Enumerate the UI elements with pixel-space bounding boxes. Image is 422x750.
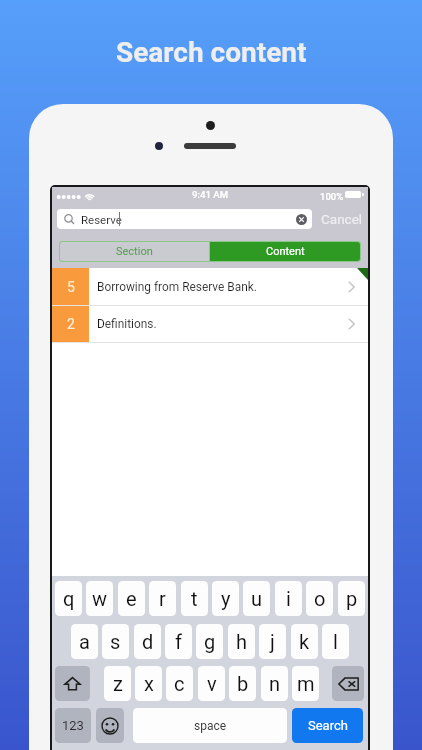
staticText: a — [79, 630, 90, 653]
staticText: x — [144, 672, 154, 695]
staticText: o — [314, 587, 326, 610]
staticText: b — [237, 672, 249, 695]
staticText: Search content — [116, 36, 307, 69]
button[interactable]: Section — [60, 242, 209, 261]
button[interactable]: Backspace — [332, 666, 364, 701]
button[interactable]: Search — [292, 708, 363, 743]
staticText: 123 — [62, 718, 84, 733]
staticText: Borrowing from Reserve Bank. — [97, 280, 257, 294]
button[interactable]: y — [212, 581, 239, 616]
button[interactable]: p — [338, 581, 365, 616]
button[interactable]: u — [243, 581, 270, 616]
button[interactable]: a — [71, 624, 98, 659]
staticText: n — [269, 672, 281, 695]
button[interactable]: j — [259, 624, 286, 659]
button[interactable]: Emoji — [96, 708, 124, 743]
staticText: c — [174, 672, 185, 695]
button[interactable]: Clear text — [296, 214, 307, 225]
button[interactable]: g — [196, 624, 223, 659]
staticText: w — [92, 587, 108, 610]
button[interactable]: b — [229, 666, 256, 701]
staticText: 2 — [67, 316, 75, 332]
button[interactable]: w — [86, 581, 113, 616]
staticText: q — [63, 587, 75, 610]
staticText: Section — [116, 245, 153, 258]
staticText: z — [113, 672, 123, 695]
button[interactable]: 5 — [52, 268, 368, 305]
staticText: Content — [266, 245, 305, 258]
button[interactable]: Cancel — [319, 209, 364, 229]
staticText: t — [191, 587, 198, 610]
button[interactable]: i — [275, 581, 302, 616]
staticText: Reserve — [81, 213, 122, 226]
staticText: Definitions. — [97, 317, 157, 331]
staticText: k — [299, 630, 310, 653]
button[interactable]: n — [261, 666, 288, 701]
staticText: j — [270, 630, 275, 653]
staticText: 9:41 AM — [192, 189, 229, 200]
button[interactable]: h — [228, 624, 255, 659]
staticText: s — [110, 630, 121, 653]
button[interactable]: t — [181, 581, 208, 616]
button[interactable]: x — [135, 666, 162, 701]
staticText: space — [194, 719, 227, 733]
staticText: y — [221, 587, 231, 610]
button[interactable]: m — [292, 666, 319, 701]
button[interactable]: 123 — [55, 708, 91, 743]
button[interactable]: 2 — [52, 306, 368, 342]
staticText: Cancel — [321, 211, 363, 227]
button[interactable]: e — [118, 581, 145, 616]
button[interactable]: l — [322, 624, 349, 659]
staticText: g — [204, 630, 216, 653]
staticText: m — [297, 672, 315, 695]
button[interactable]: Content — [210, 242, 360, 261]
button[interactable]: d — [134, 624, 161, 659]
button[interactable]: q — [55, 581, 82, 616]
staticText: v — [207, 672, 217, 695]
button[interactable]: k — [291, 624, 318, 659]
staticText: f — [175, 630, 182, 653]
button[interactable]: o — [306, 581, 333, 616]
staticText: Search — [308, 718, 348, 733]
button[interactable]: f — [165, 624, 192, 659]
staticText: i — [286, 587, 291, 610]
button[interactable]: c — [166, 666, 193, 701]
button[interactable]: v — [198, 666, 225, 701]
button[interactable]: Shift — [55, 666, 90, 701]
button[interactable]: r — [149, 581, 176, 616]
staticText: h — [236, 630, 248, 653]
staticText: 5 — [67, 279, 75, 295]
staticText: p — [346, 587, 358, 610]
button[interactable]: Reserve — [57, 209, 312, 229]
staticText: u — [251, 587, 263, 610]
staticText: d — [142, 630, 154, 653]
staticText: l — [333, 630, 338, 653]
button[interactable]: space — [133, 708, 287, 743]
staticText: r — [159, 587, 166, 610]
staticText: e — [126, 587, 137, 610]
staticText: 100% — [320, 191, 344, 202]
button[interactable]: s — [102, 624, 129, 659]
button[interactable]: z — [104, 666, 131, 701]
